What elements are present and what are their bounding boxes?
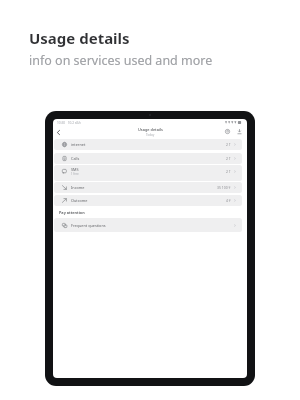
button[interactable]: SMS <box>54 165 242 181</box>
staticText: Usage details <box>138 127 163 132</box>
button[interactable]: Frequent questions <box>54 218 242 232</box>
staticText: 2 Г <box>226 156 231 161</box>
button[interactable]: internet <box>54 139 242 150</box>
staticText: Today <box>146 133 155 137</box>
button[interactable]: Income <box>54 182 242 193</box>
button[interactable]: Support chat <box>223 127 232 136</box>
staticText: 2 Г <box>226 169 231 174</box>
staticText: Usage details <box>29 28 130 48</box>
staticText: internet <box>71 142 86 147</box>
button[interactable]: Back <box>54 128 63 137</box>
staticText: 1 free <box>71 172 79 176</box>
staticText: info on services used and more <box>29 52 213 69</box>
staticText: 4 ₸ <box>226 198 231 203</box>
staticText: Calls <box>71 156 80 161</box>
staticText: Pay attention <box>59 210 85 215</box>
staticText: 2 Г <box>226 142 231 147</box>
staticText: Outcome <box>71 198 88 203</box>
button[interactable]: Outcome <box>54 195 242 206</box>
staticText: SMS <box>71 167 79 172</box>
staticText: Frequent questions <box>71 223 106 228</box>
staticText: 35 100 ₸ <box>217 185 231 190</box>
staticText: 10:30 10.2 кБ/с <box>57 121 82 125</box>
button[interactable]: Download <box>235 127 244 136</box>
button[interactable]: Calls <box>54 153 242 164</box>
staticText: Income <box>71 185 85 190</box>
